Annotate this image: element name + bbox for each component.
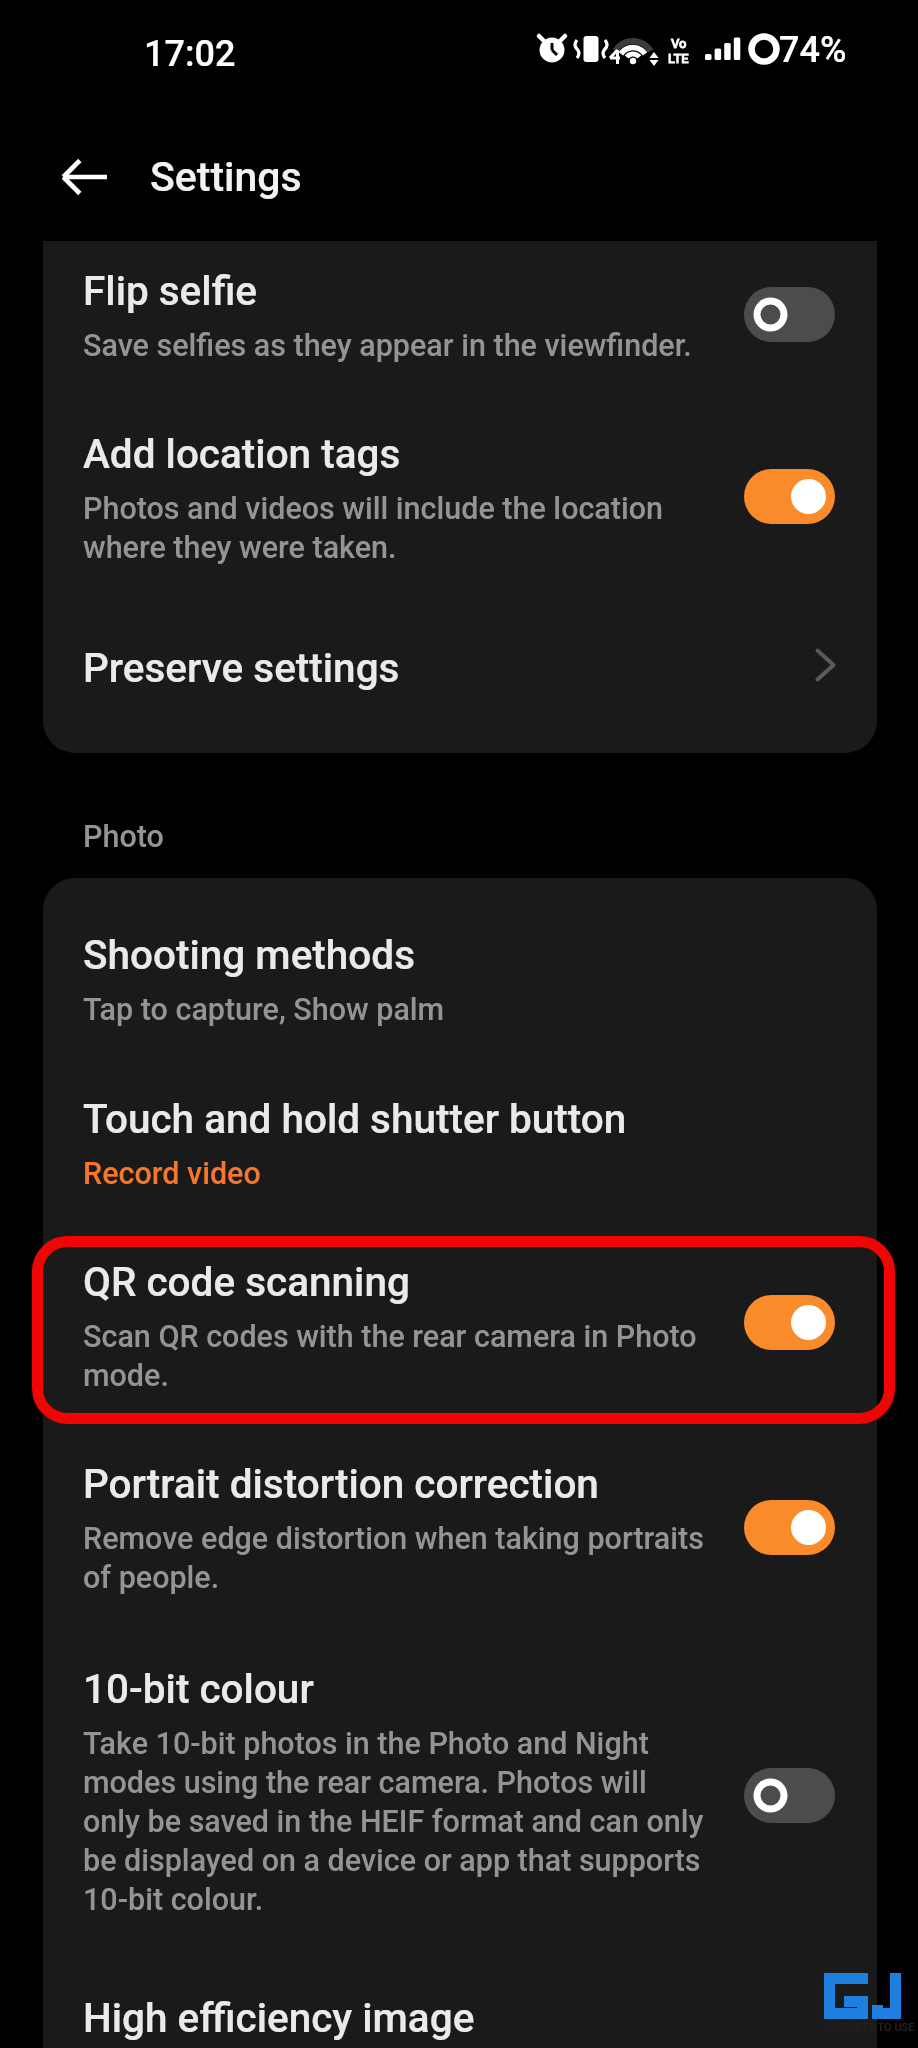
- staticText: Record video: [83, 1153, 717, 1192]
- button[interactable]: 10-bit colour: [43, 1625, 877, 1960]
- button[interactable]: QR code scanning: [43, 1236, 877, 1424]
- button[interactable]: 10-bit colour switch, off: [744, 1768, 835, 1823]
- staticText: 74%: [779, 29, 847, 71]
- button[interactable]: Touch and hold shutter button: [43, 1060, 877, 1236]
- staticText: Preserve settings: [83, 644, 400, 692]
- staticText: Take 10-bit photos in the Photo and Nigh…: [83, 1723, 717, 1918]
- button[interactable]: Preserve settings: [793, 633, 857, 697]
- staticText: 10-bit colour: [83, 1665, 314, 1713]
- button[interactable]: Flip selfie switch, off: [744, 287, 835, 342]
- button[interactable]: Add location tags: [43, 395, 877, 600]
- staticText: Add location tags: [83, 430, 401, 478]
- button[interactable]: Portrait distortion correction switch, o…: [744, 1500, 835, 1555]
- staticText: Photo: [83, 816, 164, 855]
- button[interactable]: Preserve settings: [43, 600, 877, 753]
- staticText: GADGETS TO USE: [826, 2021, 915, 2034]
- button[interactable]: Back: [40, 143, 108, 211]
- staticText: Shooting methods: [83, 931, 415, 979]
- staticText: Photos and videos will include the locat…: [83, 488, 717, 566]
- staticText: Touch and hold shutter button: [83, 1095, 627, 1143]
- button[interactable]: High efficiency image: [43, 1960, 877, 2048]
- staticText: LTE: [668, 51, 689, 66]
- staticText: Vo: [671, 36, 687, 51]
- button[interactable]: Add location tags switch, on: [744, 469, 835, 524]
- staticText: Remove edge distortion when taking portr…: [83, 1518, 717, 1596]
- staticText: QR code scanning: [83, 1258, 410, 1306]
- button[interactable]: QR code scanning switch, on: [744, 1295, 835, 1350]
- staticText: Settings: [150, 153, 302, 201]
- staticText: Flip selfie: [83, 267, 258, 315]
- staticText: 17:02: [144, 33, 236, 75]
- button[interactable]: Flip selfie: [43, 241, 877, 395]
- staticText: Tap to capture, Show palm: [83, 989, 717, 1028]
- staticText: Portrait distortion correction: [83, 1460, 599, 1508]
- staticText: Save selfies as they appear in the viewf…: [83, 325, 717, 364]
- button[interactable]: Portrait distortion correction: [43, 1424, 877, 1625]
- staticText: Scan QR codes with the rear camera in Ph…: [83, 1316, 717, 1394]
- staticText: High efficiency image: [83, 1994, 475, 2042]
- button[interactable]: Shooting methods: [43, 878, 877, 1060]
